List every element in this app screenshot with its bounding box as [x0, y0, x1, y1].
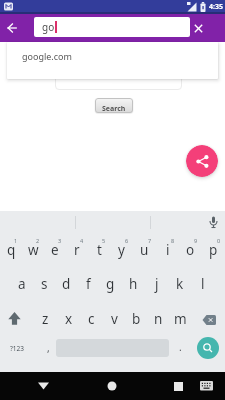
- staticText: 6: [125, 237, 129, 244]
- staticText: 1: [14, 237, 18, 244]
- button[interactable]: v: [103, 298, 125, 331]
- button[interactable]: [186, 145, 218, 177]
- staticText: 9: [194, 237, 198, 244]
- staticText: 2: [36, 237, 40, 244]
- staticText: m: [174, 310, 187, 328]
- button[interactable]: m: [169, 298, 191, 331]
- button[interactable]: 5: [88, 233, 110, 266]
- staticText: d: [62, 275, 71, 293]
- button[interactable]: 2: [22, 233, 44, 266]
- button[interactable]: l: [191, 266, 214, 298]
- button[interactable]: 0: [202, 233, 225, 266]
- staticText: a: [18, 275, 26, 293]
- staticText: 7: [148, 237, 152, 244]
- button[interactable]: 4: [66, 233, 88, 266]
- staticText: 5: [102, 237, 106, 244]
- button[interactable]: b: [125, 298, 147, 331]
- button[interactable]: j: [145, 266, 168, 298]
- staticText: 8: [171, 237, 175, 244]
- button[interactable]: 3: [44, 233, 66, 266]
- staticText: r: [74, 241, 80, 259]
- button[interactable]: 6: [110, 233, 133, 266]
- staticText: v: [111, 310, 118, 328]
- button[interactable]: 1: [0, 233, 22, 266]
- button[interactable]: z: [34, 298, 57, 331]
- button[interactable]: 8: [156, 233, 179, 266]
- button[interactable]: h: [122, 266, 145, 298]
- button[interactable]: g: [99, 266, 122, 298]
- button[interactable]: google.com: [7, 42, 218, 79]
- button[interactable]: .: [169, 331, 191, 359]
- staticText: o: [186, 241, 195, 259]
- button[interactable]: [0, 14, 24, 42]
- staticText: i: [166, 241, 170, 259]
- staticText: h: [129, 275, 138, 293]
- staticText: y: [118, 241, 125, 259]
- staticText: z: [42, 310, 49, 328]
- staticText: go: [42, 20, 55, 34]
- button[interactable]: ,: [34, 331, 56, 359]
- button[interactable]: x: [57, 298, 80, 331]
- staticText: google.com: [22, 50, 72, 62]
- button[interactable]: [0, 298, 34, 331]
- staticText: .: [179, 340, 182, 354]
- staticText: c: [88, 310, 95, 328]
- staticText: ,: [47, 341, 50, 355]
- staticText: f: [86, 275, 91, 293]
- button[interactable]: c: [80, 298, 103, 331]
- button[interactable]: d: [55, 266, 77, 298]
- staticText: p: [209, 241, 218, 259]
- button[interactable]: n: [147, 298, 169, 331]
- staticText: j: [155, 275, 159, 293]
- staticText: s: [41, 275, 48, 293]
- staticText: k: [176, 275, 184, 293]
- button[interactable]: [98, 372, 126, 400]
- button[interactable]: Search: [95, 98, 133, 113]
- staticText: e: [51, 241, 59, 259]
- button[interactable]: [184, 14, 213, 42]
- staticText: w: [28, 241, 39, 259]
- button[interactable]: [193, 372, 219, 400]
- staticText: t: [97, 241, 102, 259]
- button[interactable]: k: [168, 266, 191, 298]
- button[interactable]: [29, 372, 57, 400]
- button[interactable]: [56, 331, 169, 359]
- staticText: n: [154, 310, 163, 328]
- staticText: 3: [58, 237, 62, 244]
- button[interactable]: go: [34, 17, 190, 37]
- staticText: ?123: [10, 344, 24, 353]
- staticText: 4: [80, 237, 84, 244]
- button[interactable]: [191, 331, 225, 359]
- staticText: q: [7, 241, 16, 259]
- button[interactable]: [191, 298, 225, 331]
- staticText: x: [65, 310, 73, 328]
- staticText: 4:35: [209, 2, 223, 12]
- button[interactable]: a: [11, 266, 33, 298]
- staticText: g: [106, 275, 115, 293]
- staticText: 0: [217, 237, 221, 244]
- button[interactable]: ?123: [0, 331, 34, 359]
- button[interactable]: f: [77, 266, 99, 298]
- button[interactable]: 9: [179, 233, 202, 266]
- button[interactable]: [164, 372, 192, 400]
- button[interactable]: 7: [133, 233, 156, 266]
- staticText: l: [201, 275, 205, 293]
- staticText: Search: [102, 104, 126, 113]
- staticText: u: [140, 241, 149, 259]
- staticText: b: [132, 310, 141, 328]
- button[interactable]: s: [33, 266, 55, 298]
